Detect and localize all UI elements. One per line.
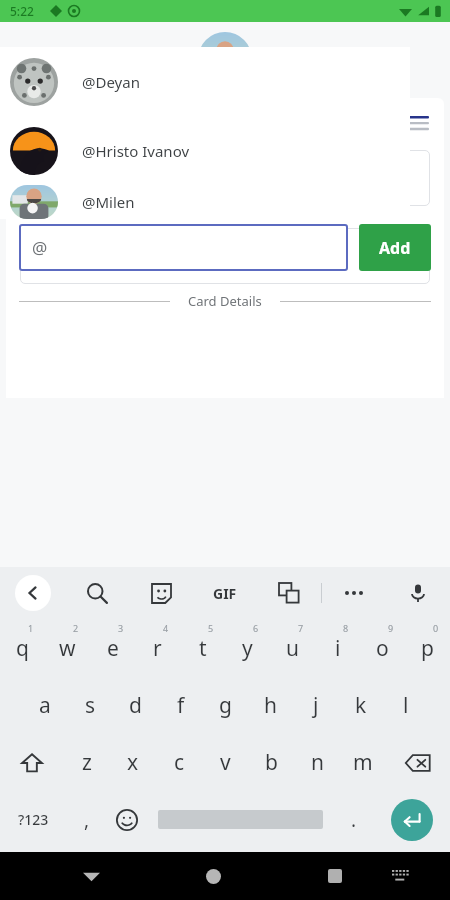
staticText: y [242,634,253,663]
button[interactable]: ?123 [0,791,67,848]
button[interactable]: Field 5 [20,228,430,284]
staticText: 3 [118,622,124,634]
staticText: i [335,634,341,663]
staticText: 6 [253,622,259,634]
staticText: e [107,634,119,663]
button[interactable]: Recents [302,852,368,900]
button[interactable]: y [225,619,270,677]
button[interactable]: Stickers [129,567,193,619]
staticText: j [313,691,319,720]
button[interactable]: , [67,791,107,848]
button[interactable]: . [334,791,374,848]
staticText: . [351,807,357,833]
button[interactable]: l [383,677,428,734]
button[interactable]: c [156,734,202,791]
staticText: 7 [298,622,304,634]
staticText: b [265,748,278,777]
staticText: t [199,634,207,663]
button[interactable]: Field 3 [20,150,430,206]
staticText: v [220,748,231,777]
button[interactable]: e [90,619,135,677]
button[interactable]: Switch keyboard [368,852,434,900]
staticText: 2 [73,622,79,634]
staticText: a [39,691,51,720]
button[interactable]: Add [359,224,431,271]
staticText: ?123 [18,810,49,829]
button[interactable]: @Hristo Ivanov [0,116,410,185]
button[interactable]: Voice input [386,567,450,619]
button[interactable]: Space [147,791,334,848]
staticText: 8 [343,622,349,634]
staticText: Field 5 [32,246,78,266]
staticText: z [82,748,92,777]
button[interactable]: r [135,619,180,677]
staticText: c [174,748,185,777]
staticText: q [16,634,29,663]
button[interactable]: t [180,619,225,677]
staticText: w [59,634,76,663]
button[interactable]: n [294,734,340,791]
button[interactable]: x [110,734,156,791]
staticText: d [129,691,142,720]
button[interactable]: More options [322,567,386,619]
button[interactable]: j [293,677,338,734]
staticText: l [403,691,409,720]
staticText: m [353,748,373,777]
button[interactable]: z [64,734,110,791]
button[interactable]: o [360,619,405,677]
button[interactable]: Emoji [107,791,147,848]
button[interactable]: v [202,734,248,791]
button[interactable]: k [338,677,383,734]
staticText: 1 [28,622,34,634]
button[interactable]: s [68,677,113,734]
button[interactable]: Enter [374,791,450,848]
button[interactable]: Shift [0,734,64,791]
staticText: 5 [208,622,214,634]
button[interactable]: a [22,677,68,734]
button[interactable]: Search [65,567,129,619]
button[interactable]: @Milen [0,185,410,219]
staticText: 0 [433,622,439,634]
button[interactable]: Back [0,567,65,619]
button[interactable]: d [113,677,158,734]
button[interactable]: m [340,734,386,791]
staticText: , [84,807,90,833]
staticText: h [264,691,277,720]
button[interactable]: p [405,619,450,677]
button[interactable]: u [270,619,315,677]
button[interactable]: w [45,619,90,677]
staticText: n [311,748,324,777]
staticText: GIF [213,584,237,603]
staticText: 4 [163,622,169,634]
staticText: Field 3 [32,168,78,188]
staticText: @Hristo Ivanov [82,141,190,161]
button[interactable]: Backspace [386,734,450,791]
button[interactable]: i [315,619,360,677]
staticText: r [153,634,162,663]
button[interactable]: @Deyan [0,47,410,116]
button[interactable]: g [203,677,248,734]
staticText: o [376,634,389,663]
button[interactable]: b [248,734,294,791]
staticText: k [355,691,367,720]
button[interactable]: Translate [257,567,321,619]
staticText: g [219,691,232,720]
staticText: f [177,691,185,720]
staticText: @ [32,236,48,259]
button[interactable]: Home [180,852,246,900]
button[interactable]: h [248,677,293,734]
button[interactable]: GIF [193,567,257,619]
staticText: 5:22 [10,3,34,19]
staticText: x [127,748,139,777]
button[interactable]: f [158,677,203,734]
staticText: @Deyan [82,72,140,92]
staticText: 9 [388,622,394,634]
staticText: Card Details [188,292,262,310]
staticText: @Milen [82,192,135,212]
staticText: p [421,634,434,663]
button[interactable]: q [0,619,45,677]
button[interactable]: @ [19,224,348,271]
staticText: u [286,634,299,663]
button[interactable]: Hide keyboard [58,852,124,900]
button[interactable]: Menu [402,106,436,140]
